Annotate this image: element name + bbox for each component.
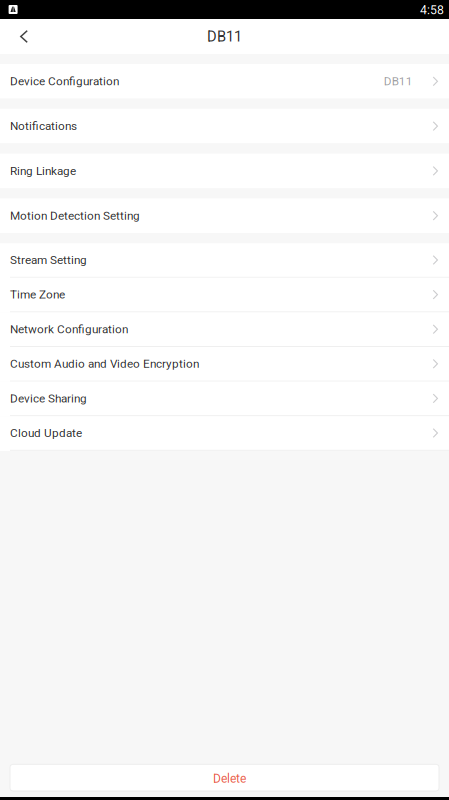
- staticText: Ring Linkage: [10, 164, 76, 178]
- button[interactable]: Back: [0, 21, 44, 52]
- staticText: 4:58: [420, 3, 444, 17]
- staticText: Device Sharing: [10, 391, 87, 405]
- button[interactable]: Notifications: [0, 109, 449, 143]
- button[interactable]: Custom Audio and Video Encryption: [0, 347, 449, 382]
- button[interactable]: Ring Linkage: [0, 154, 449, 188]
- staticText: Network Configuration: [10, 322, 128, 336]
- button[interactable]: Device Configuration: [0, 64, 449, 99]
- button[interactable]: Motion Detection Setting: [0, 198, 449, 233]
- staticText: Motion Detection Setting: [10, 209, 140, 223]
- staticText: Delete: [213, 772, 246, 786]
- button[interactable]: Cloud Update: [0, 416, 449, 451]
- staticText: DB11: [207, 28, 242, 45]
- button[interactable]: Network Configuration: [0, 312, 449, 347]
- staticText: Time Zone: [10, 288, 65, 301]
- staticText: Stream Setting: [10, 253, 87, 267]
- button[interactable]: Delete: [10, 764, 439, 791]
- staticText: Notifications: [10, 119, 77, 133]
- staticText: Cloud Update: [10, 426, 82, 440]
- staticText: DB11: [384, 74, 413, 88]
- button[interactable]: Device Sharing: [0, 382, 449, 416]
- button[interactable]: Time Zone: [0, 278, 449, 312]
- staticText: Custom Audio and Video Encryption: [10, 357, 199, 371]
- button[interactable]: Stream Setting: [0, 243, 449, 278]
- staticText: Device Configuration: [10, 74, 119, 88]
